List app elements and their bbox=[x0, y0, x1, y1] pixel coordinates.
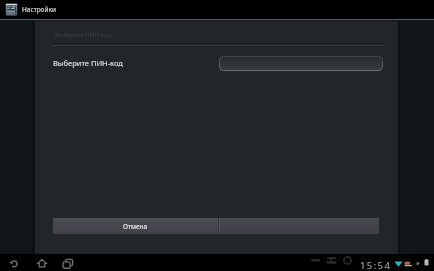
button[interactable]: Recent apps bbox=[61, 256, 75, 270]
button[interactable]: Settings bbox=[5, 0, 57, 19]
staticText: Отмена bbox=[123, 222, 148, 231]
staticText: Выберите ПИН-код bbox=[55, 31, 111, 39]
button[interactable] bbox=[220, 218, 379, 234]
button[interactable]: PIN entry field bbox=[219, 56, 383, 71]
staticText: 15:54 bbox=[360, 259, 392, 271]
staticText: Выберите ПИН-код bbox=[53, 58, 123, 68]
staticText: Настройки bbox=[22, 5, 57, 14]
button[interactable]: Status and notifications bbox=[308, 254, 434, 271]
button[interactable]: Home bbox=[35, 256, 49, 270]
button[interactable]: Отмена bbox=[53, 218, 218, 234]
button[interactable]: Back bbox=[7, 256, 21, 270]
